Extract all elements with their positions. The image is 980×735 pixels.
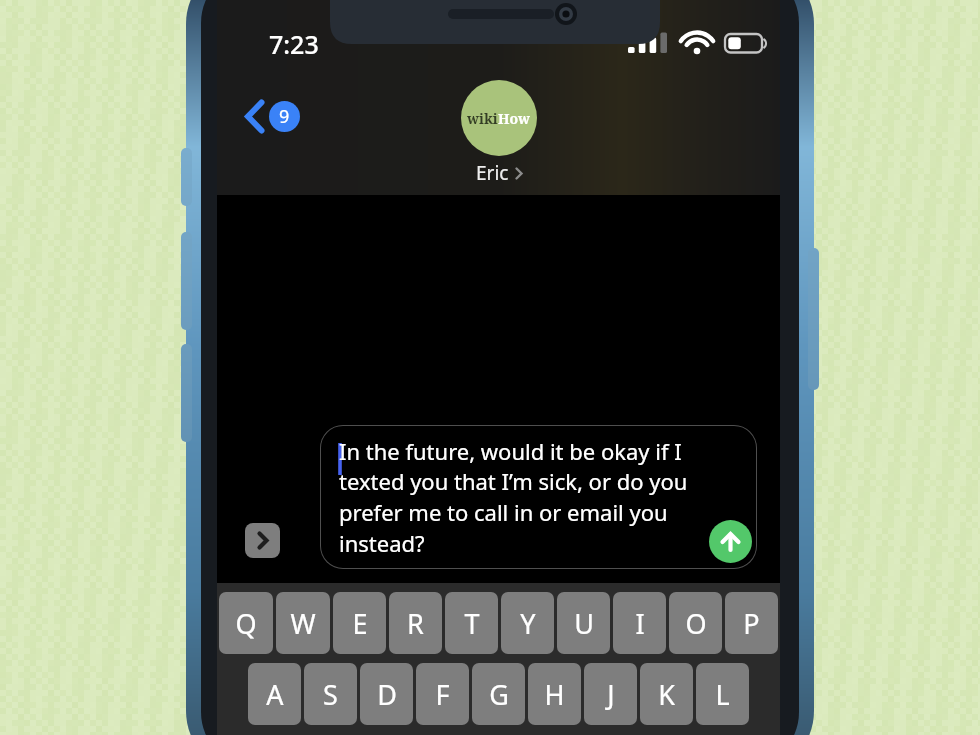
button[interactable]: T	[445, 592, 498, 654]
staticText: L	[715, 676, 730, 713]
button[interactable]: R	[389, 592, 442, 654]
staticText: O	[685, 605, 707, 642]
staticText: H	[544, 676, 565, 713]
staticText: F	[435, 676, 450, 713]
staticText: R	[407, 605, 424, 642]
button[interactable]: L	[696, 663, 749, 725]
button[interactable]: S	[304, 663, 357, 725]
button[interactable]: O	[669, 592, 722, 654]
staticText: G	[489, 676, 509, 713]
staticText: Q	[235, 605, 257, 642]
button[interactable]: A	[248, 663, 301, 725]
button[interactable]: E	[333, 592, 386, 654]
staticText: T	[464, 605, 480, 642]
staticText: D	[377, 676, 397, 713]
staticText: How	[498, 109, 531, 128]
button[interactable]: Send	[709, 520, 752, 563]
button[interactable]: wiki	[461, 80, 537, 186]
button[interactable]: Q	[219, 592, 273, 654]
staticText: P	[743, 605, 760, 642]
button[interactable]: D	[360, 663, 413, 725]
button[interactable]: P	[725, 592, 778, 654]
button[interactable]: In the future, would it be okay if I tex…	[320, 425, 757, 569]
staticText: U	[574, 605, 594, 642]
staticText: In the future, would it be okay if I tex…	[339, 436, 747, 559]
staticText: Y	[520, 605, 536, 642]
staticText: K	[658, 676, 675, 713]
button[interactable]: J	[584, 663, 637, 725]
staticText: I	[635, 605, 645, 642]
button[interactable]: F	[416, 663, 469, 725]
staticText: S	[323, 676, 338, 713]
staticText: E	[352, 605, 368, 642]
staticText: A	[266, 676, 284, 713]
button[interactable]: K	[640, 663, 693, 725]
staticText: J	[607, 676, 615, 713]
button[interactable]: G	[472, 663, 525, 725]
button[interactable]: Y	[501, 592, 554, 654]
button[interactable]: Back, 9 unread	[239, 95, 306, 138]
staticText: wiki	[467, 109, 498, 128]
button[interactable]: More options	[245, 523, 280, 558]
button[interactable]: H	[528, 663, 581, 725]
staticText: W	[290, 605, 316, 642]
staticText: Eric	[476, 160, 509, 186]
staticText: 7:23	[269, 27, 319, 61]
button[interactable]: U	[557, 592, 610, 654]
button[interactable]: I	[613, 592, 666, 654]
staticText: 9	[279, 104, 290, 129]
button[interactable]: W	[276, 592, 330, 654]
